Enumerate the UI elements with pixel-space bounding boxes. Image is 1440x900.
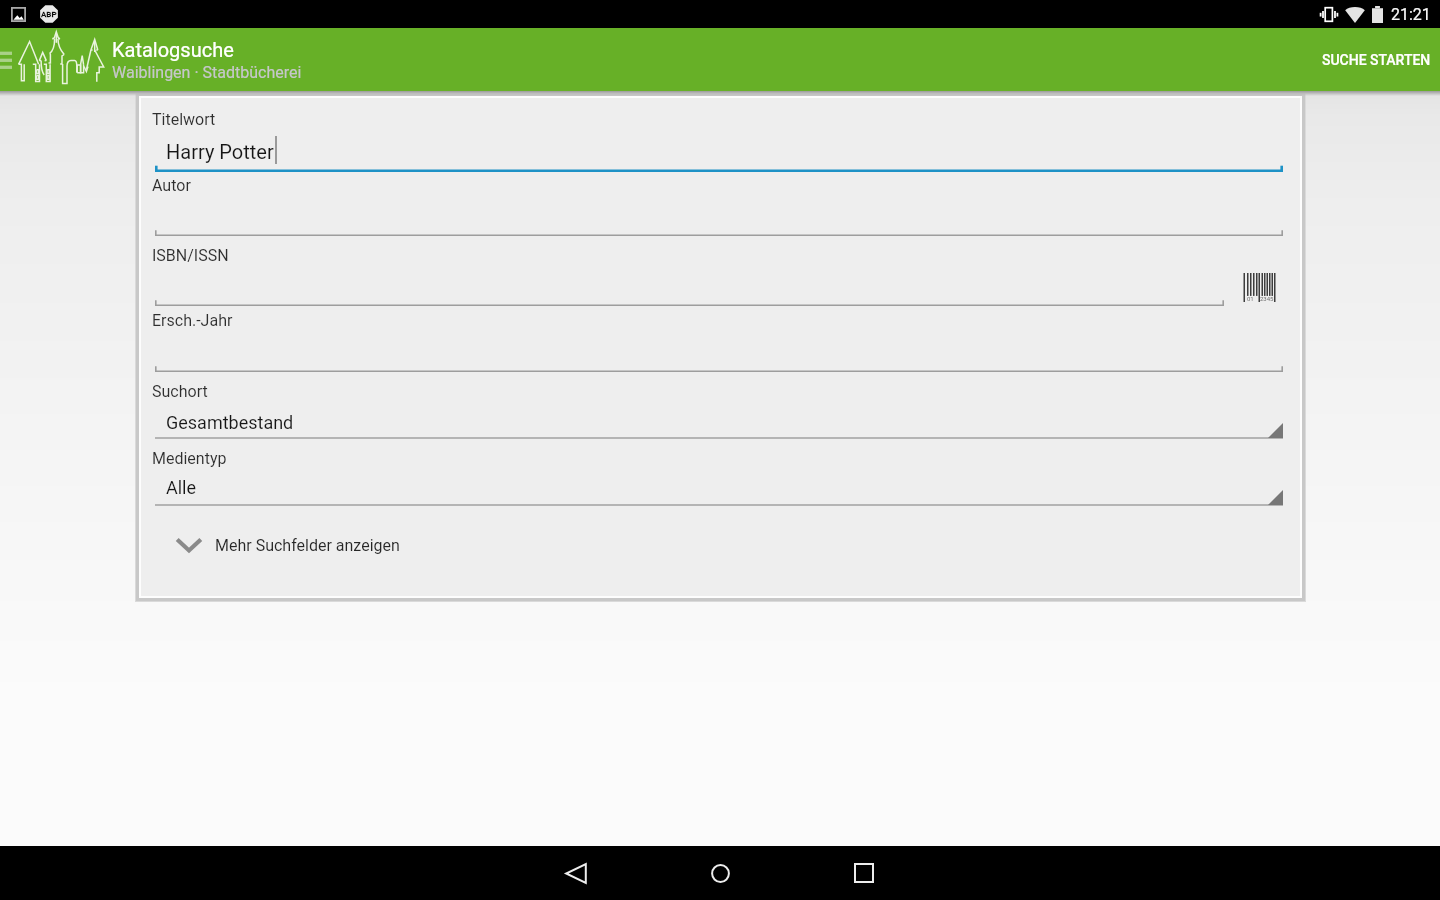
button[interactable]: Suchort: Gesamtbestand <box>155 398 1283 440</box>
staticText: Medientyp <box>152 449 227 468</box>
staticText: Ersch.-Jahr <box>152 311 233 330</box>
staticText: 01 <box>1247 295 1254 302</box>
staticText: 21:21 <box>1391 5 1431 24</box>
staticText: 2345 <box>1260 295 1274 302</box>
button[interactable]: Open navigation drawer <box>0 48 12 70</box>
staticText: Titelwort <box>152 110 216 129</box>
staticText: Mehr Suchfelder anzeigen <box>215 536 400 555</box>
staticText: Alle <box>166 477 197 498</box>
staticText: Waiblingen · Stadtbücherei <box>112 63 302 82</box>
button[interactable]: Erscheinungsjahr <box>155 329 1283 373</box>
button[interactable]: Mehr Suchfelder anzeigen <box>175 525 575 565</box>
button[interactable]: SUCHE STARTEN <box>1306 28 1440 91</box>
button[interactable]: Back <box>552 849 600 897</box>
button[interactable]: Home <box>696 849 744 897</box>
button[interactable]: Recent apps <box>840 849 888 897</box>
staticText: Suchort <box>152 382 208 401</box>
button[interactable]: Medientyp: Alle <box>155 465 1283 507</box>
staticText: SUCHE STARTEN <box>1322 52 1431 68</box>
button[interactable]: Autor <box>155 193 1283 237</box>
staticText: Katalogsuche <box>112 38 234 61</box>
staticText: Harry Potter <box>166 140 274 163</box>
button[interactable]: Titelwort: Harry Potter <box>155 124 1283 172</box>
staticText: ABP <box>41 10 57 19</box>
button[interactable]: ISBN/ISSN <box>155 263 1224 307</box>
button[interactable]: Scan barcode <box>1237 266 1282 309</box>
staticText: Gesamtbestand <box>166 412 294 433</box>
staticText: ISBN/ISSN <box>152 246 229 265</box>
staticText: Autor <box>152 176 191 195</box>
